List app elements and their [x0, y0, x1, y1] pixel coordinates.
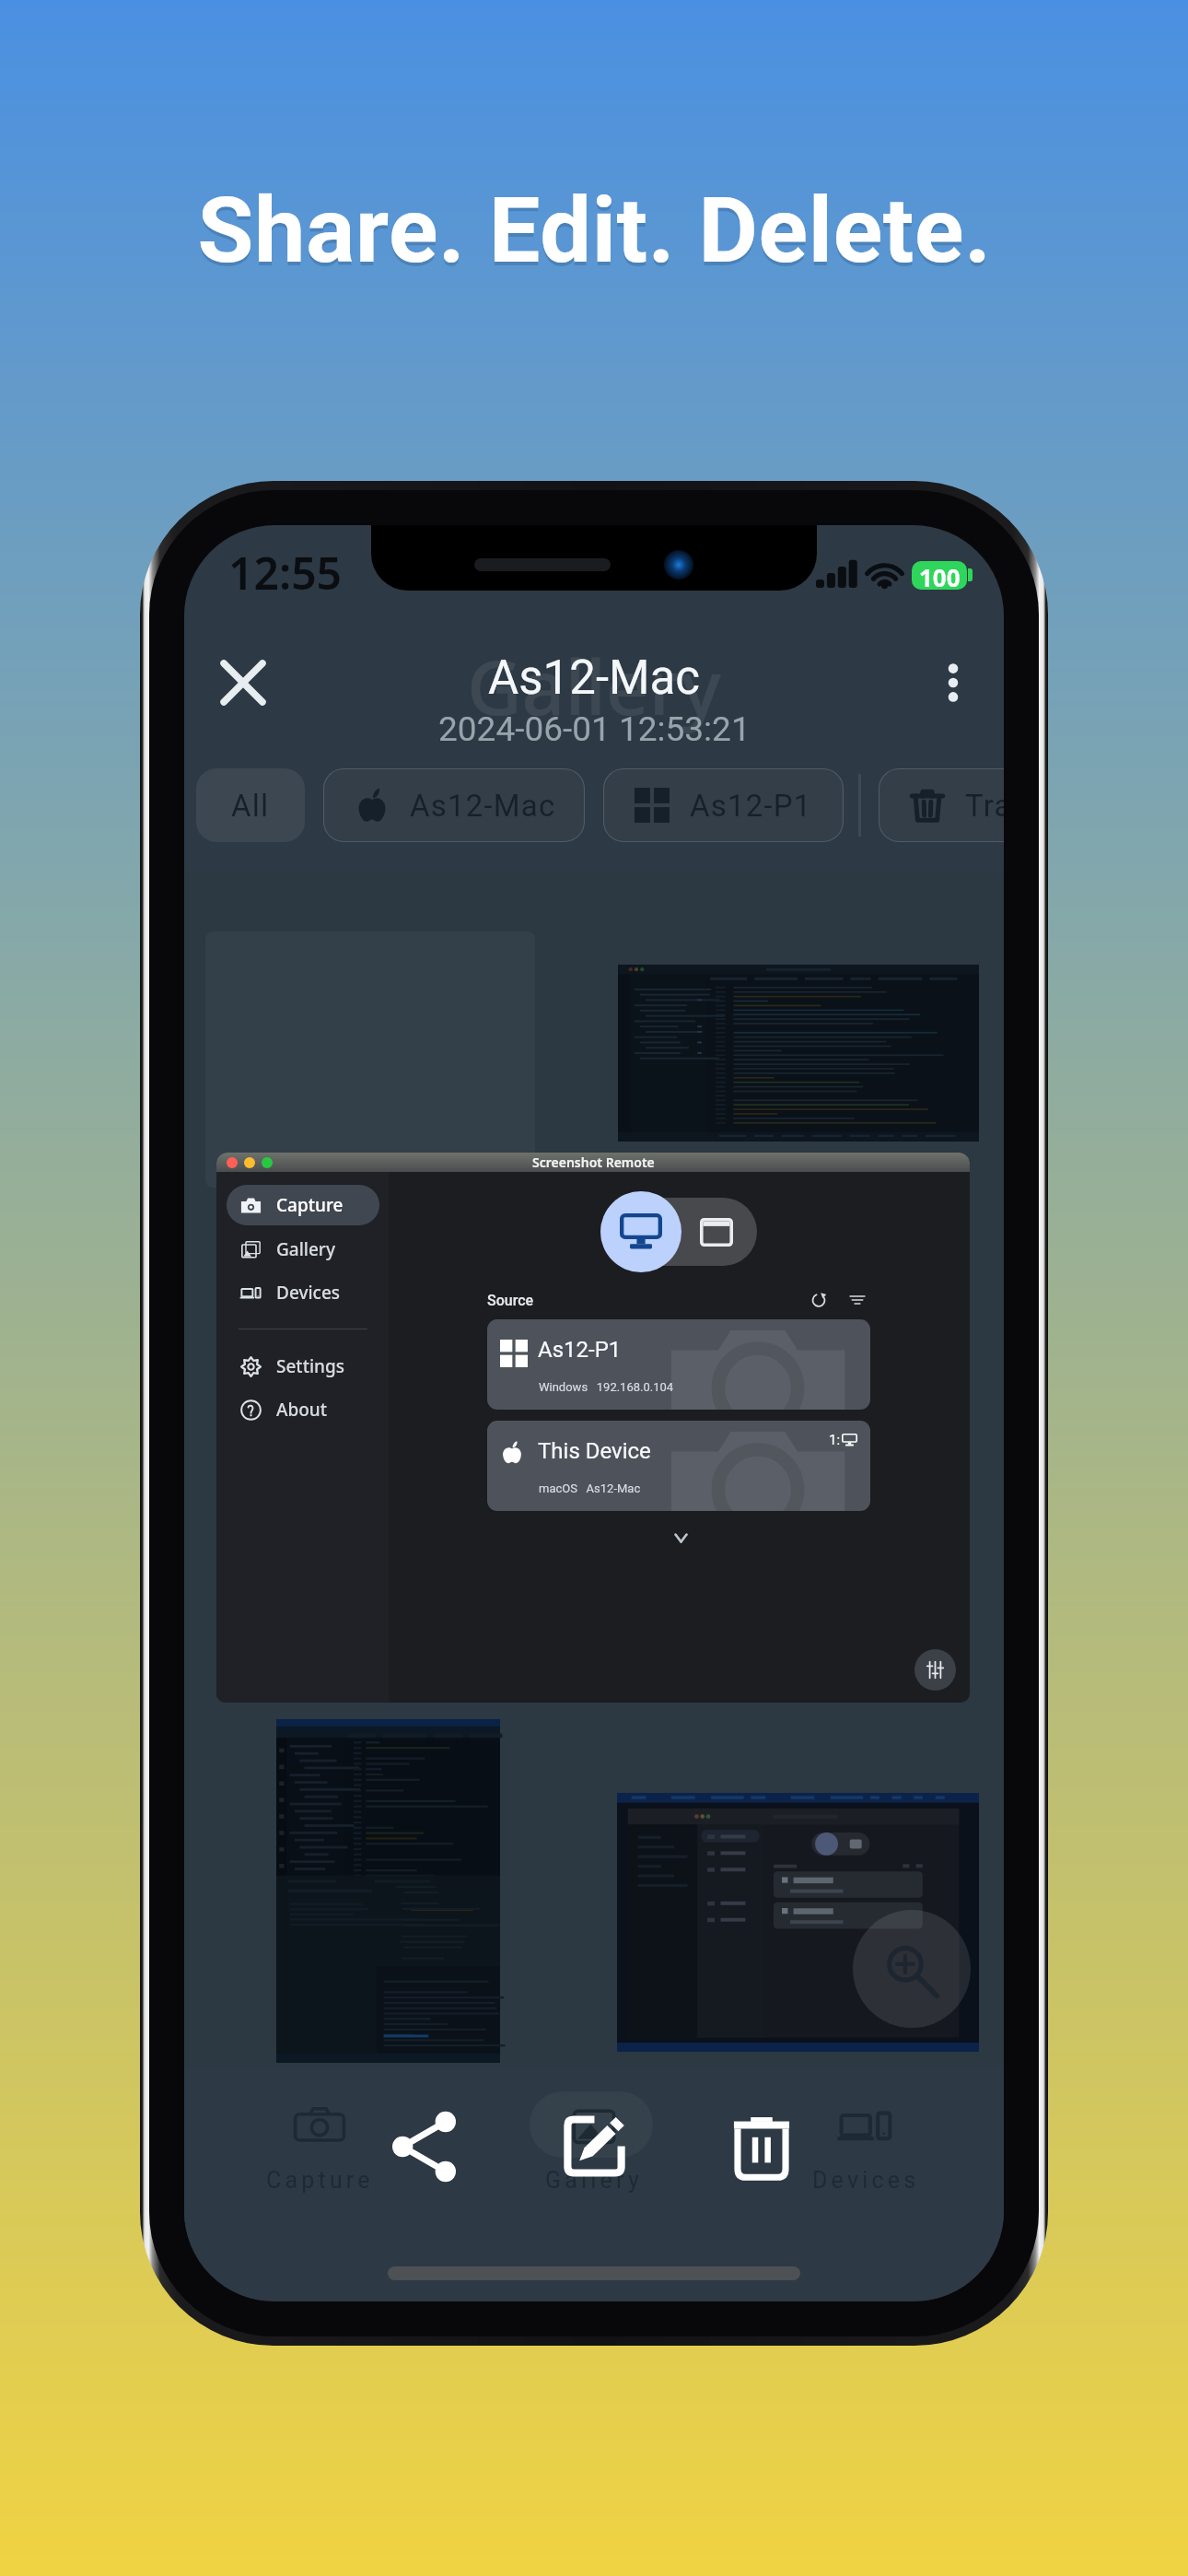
staticText: Capture: [276, 1193, 344, 1217]
button[interactable]: Settings: [227, 1346, 379, 1387]
staticText: Source: [487, 1292, 534, 1309]
staticText: About: [276, 1398, 328, 1422]
staticText: Share. Edit. Delete.: [197, 181, 992, 287]
staticText: Gallery: [467, 634, 721, 737]
button[interactable]: Close: [199, 638, 287, 727]
button[interactable]: Devices: [787, 2099, 944, 2194]
staticText: Gallery: [545, 2167, 643, 2194]
button[interactable]: Share: [372, 2095, 475, 2198]
staticText: macOS As12-Mac: [539, 1481, 641, 1495]
button[interactable]: Devices: [227, 1272, 379, 1313]
button[interactable]: Gallery: [227, 1229, 379, 1270]
staticText: Share. Edit. Delete.: [197, 177, 992, 284]
staticText: This Device: [538, 1438, 651, 1464]
button[interactable]: [618, 965, 979, 1142]
button[interactable]: All: [196, 768, 305, 842]
staticText: 12:55: [228, 543, 343, 603]
button[interactable]: Capture: [227, 1185, 379, 1225]
button[interactable]: Edit: [542, 2094, 646, 2197]
button[interactable]: As12-P1: [603, 768, 844, 842]
staticText: As12-Mac: [488, 650, 700, 706]
staticText: Capture: [266, 2167, 374, 2194]
staticText: 2024-06-01 12:53:21: [438, 709, 751, 749]
button[interactable]: [276, 1719, 500, 2063]
button[interactable]: Zoom in: [853, 1910, 971, 2028]
button[interactable]: As12-Mac: [323, 768, 585, 842]
button[interactable]: [205, 931, 535, 1188]
staticText: Gallery: [276, 1237, 335, 1261]
staticText: Devices: [812, 2167, 920, 2194]
button[interactable]: Tra: [879, 768, 1004, 842]
staticText: Screenshot Remote: [532, 1153, 655, 1171]
staticText: Devices: [276, 1281, 341, 1305]
button[interactable]: Refresh: [806, 1287, 832, 1313]
button[interactable]: Delete: [710, 2095, 813, 2198]
button[interactable]: This Device: [487, 1421, 870, 1511]
button[interactable]: Filter: [844, 1287, 870, 1313]
button[interactable]: More options: [909, 638, 997, 727]
staticText: All: [231, 788, 270, 824]
button[interactable]: About: [227, 1389, 379, 1430]
button[interactable]: As12-P1: [487, 1319, 870, 1410]
button[interactable]: [617, 1793, 979, 2052]
staticText: Settings: [276, 1354, 344, 1378]
staticText: 100: [919, 561, 961, 590]
staticText: 1:: [829, 1432, 841, 1448]
button[interactable]: Gallery: [516, 2099, 672, 2194]
staticText: As12-Mac: [410, 788, 556, 824]
button[interactable]: Capture: [241, 2099, 398, 2194]
staticText: Tra: [965, 788, 1004, 824]
staticText: As12-P1: [690, 788, 812, 824]
button[interactable]: Capture mode: [600, 1198, 757, 1266]
button[interactable]: Adjust settings: [914, 1649, 956, 1691]
staticText: Windows 192.168.0.104: [539, 1380, 674, 1394]
staticText: As12-P1: [538, 1337, 622, 1363]
